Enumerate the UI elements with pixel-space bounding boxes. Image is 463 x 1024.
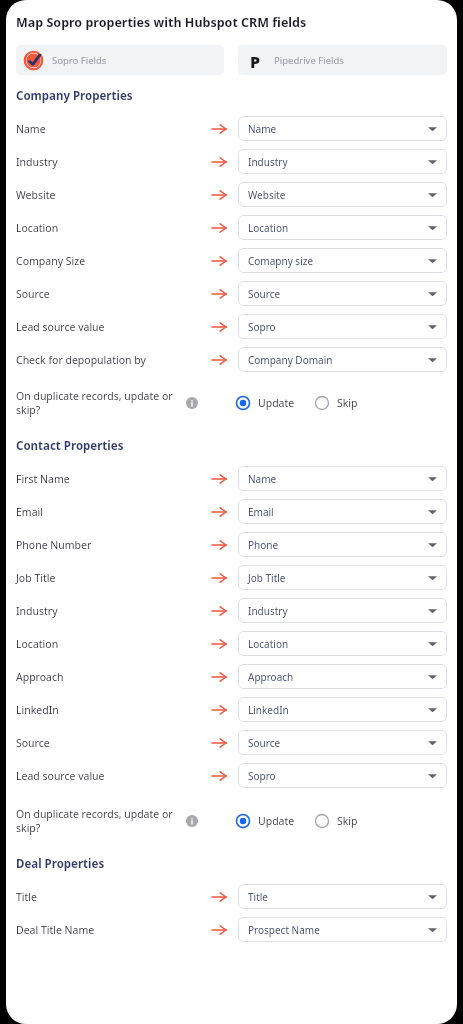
button[interactable]: Phone [238,532,447,557]
staticText: Company Domain [248,353,428,367]
button[interactable]: Name [238,116,447,141]
staticText: Source [16,287,50,301]
staticText: Source [248,287,428,301]
staticText: Comapny size [248,254,428,268]
button[interactable]: Name [238,466,447,491]
staticText: Sopro [248,320,428,334]
button[interactable]: Website [238,182,447,207]
button[interactable]: Name [6,116,457,149]
other: maps to [212,473,226,485]
other: maps to [212,671,226,683]
button[interactable]: Location [6,631,457,664]
button[interactable]: Company Domain [238,347,447,372]
staticText: Approach [16,670,64,684]
button[interactable]: LinkedIn [6,697,457,730]
other: maps to [212,704,226,716]
staticText: Email [248,505,428,519]
button[interactable]: Comapny size [238,248,447,273]
button[interactable]: Company Size [6,248,457,281]
button[interactable]: Update [236,814,295,828]
staticText: Location [16,637,59,651]
staticText: Lead source value [16,320,105,334]
button[interactable]: First Name [6,466,457,499]
staticText: Contact Properties [16,438,124,454]
other: maps to [212,123,226,135]
button[interactable]: LinkedIn [238,697,447,722]
button[interactable]: Sopro [238,314,447,339]
staticText: Job Title [248,571,428,585]
staticText: Company Size [16,254,86,268]
staticText: Title [16,890,37,904]
button[interactable]: Source [238,281,447,306]
other: maps to [212,506,226,518]
other: maps to [212,770,226,782]
button[interactable]: Title [238,884,447,909]
other: maps to [212,288,226,300]
button[interactable]: Location [238,215,447,240]
other: maps to [212,605,226,617]
button[interactable]: Title [6,884,457,917]
other: maps to [212,156,226,168]
staticText: P [250,51,261,70]
other: maps to [212,891,226,903]
button[interactable]: Industry [238,598,447,623]
button[interactable]: Email [6,499,457,532]
other: More information [186,815,198,827]
staticText: Source [248,736,428,750]
staticText: Location [248,221,428,235]
button[interactable]: Sopro [238,763,447,788]
button[interactable]: Job Title [6,565,457,598]
other: maps to [212,572,226,584]
button[interactable]: Website [6,182,457,215]
staticText: Phone Number [16,538,92,552]
staticText: On duplicate records, update or skip? [16,807,176,835]
staticText: Lead source value [16,769,105,783]
button[interactable]: Update [236,396,295,410]
staticText: Website [16,188,56,202]
staticText: First Name [16,472,70,486]
staticText: Approach [248,670,428,684]
staticText: Update [258,814,295,828]
button[interactable]: Sopro Fields [16,45,224,75]
other: maps to [212,638,226,650]
button[interactable]: Source [238,730,447,755]
staticText: Job Title [16,571,56,585]
button[interactable]: Skip [315,396,358,410]
staticText: Deal Properties [16,856,105,872]
staticText: Industry [16,155,58,169]
button[interactable]: Prospect Name [238,917,447,942]
staticText: Email [16,505,43,519]
staticText: Sopro Fields [52,54,107,67]
button[interactable]: Deal Title Name [6,917,457,950]
button[interactable]: Job Title [238,565,447,590]
other: maps to [212,354,226,366]
button[interactable]: Source [6,730,457,763]
button[interactable]: Check for depopulation by [6,347,457,380]
staticText: Deal Title Name [16,923,95,937]
other: maps to [212,189,226,201]
button[interactable]: Approach [6,664,457,697]
other: maps to [212,321,226,333]
button[interactable]: Approach [238,664,447,689]
button[interactable]: Skip [315,814,358,828]
staticText: Name [248,472,428,486]
button[interactable]: Email [238,499,447,524]
button[interactable]: P [238,45,447,75]
button[interactable]: Industry [6,149,457,182]
button[interactable]: Location [238,631,447,656]
other: More information [186,397,198,409]
button[interactable]: Industry [6,598,457,631]
staticText: Skip [337,814,358,828]
button[interactable]: Lead source value [6,763,457,796]
button[interactable]: Phone Number [6,532,457,565]
staticText: Industry [248,155,428,169]
staticText: Map Sopro properties with Hubspot CRM fi… [16,14,307,31]
staticText: LinkedIn [16,703,59,717]
staticText: Sopro [248,769,428,783]
staticText: Prospect Name [248,923,428,937]
button[interactable]: Lead source value [6,314,457,347]
button[interactable]: Source [6,281,457,314]
button[interactable]: Location [6,215,457,248]
staticText: Skip [337,396,358,410]
button[interactable]: Industry [238,149,447,174]
